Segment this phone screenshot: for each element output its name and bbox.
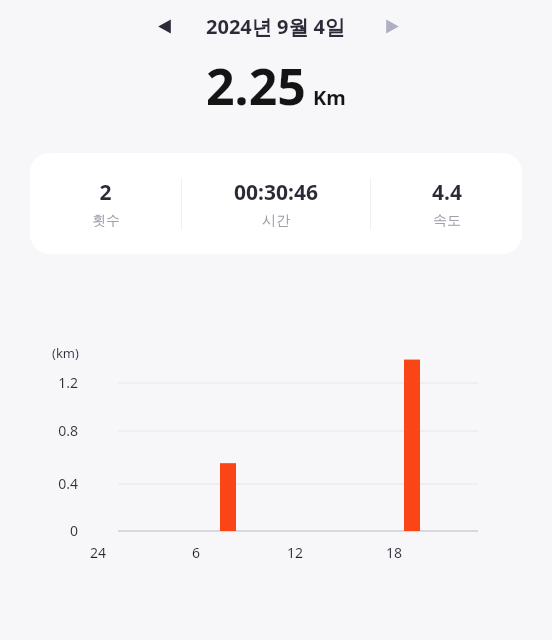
staticText: 0: [30, 521, 78, 540]
staticText: 0.8: [30, 421, 78, 440]
staticText: 18: [369, 543, 419, 562]
staticText: 2024년 9월 4일: [206, 13, 346, 40]
staticText: 2: [99, 178, 112, 207]
staticText: Km: [313, 84, 346, 111]
button[interactable]: 2024년 9월 4일: [198, 9, 354, 44]
staticText: 횟수: [92, 212, 120, 230]
staticText: 속도: [433, 212, 461, 230]
staticText: 12: [270, 543, 320, 562]
staticText: 시간: [262, 212, 290, 230]
staticText: 1.2: [30, 373, 78, 392]
staticText: 00:30:46: [234, 178, 318, 207]
staticText: (km): [52, 344, 79, 362]
staticText: 24: [73, 543, 123, 562]
staticText: 2.25: [206, 52, 306, 118]
button[interactable]: Next day: [374, 8, 410, 44]
staticText: 0.4: [30, 474, 78, 493]
button[interactable]: Previous day: [146, 8, 182, 44]
staticText: 6: [171, 543, 221, 562]
button[interactable]: 2: [30, 153, 522, 254]
staticText: 4.4: [432, 178, 462, 207]
